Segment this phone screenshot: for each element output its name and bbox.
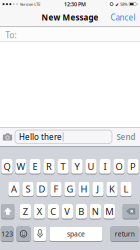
staticText: K bbox=[109, 183, 115, 195]
staticText: G bbox=[66, 183, 73, 195]
staticText: I bbox=[103, 160, 106, 172]
staticText: C bbox=[50, 205, 56, 217]
staticText: P bbox=[130, 160, 136, 172]
button[interactable]: Camera bbox=[0, 128, 15, 146]
staticText: X bbox=[37, 205, 42, 217]
button[interactable]: Numbers bbox=[1, 226, 13, 242]
staticText: N bbox=[92, 205, 99, 217]
button[interactable]: Dictate bbox=[33, 226, 46, 242]
button[interactable]: space bbox=[49, 226, 102, 242]
staticText: W bbox=[16, 160, 25, 172]
staticText: M bbox=[105, 205, 113, 217]
button[interactable]: M bbox=[104, 204, 115, 219]
staticText: Y bbox=[74, 160, 79, 172]
button[interactable]: B bbox=[76, 204, 87, 219]
button[interactable]: Emoji bbox=[16, 226, 30, 242]
staticText: space bbox=[67, 229, 85, 238]
button[interactable]: L bbox=[120, 181, 132, 197]
button[interactable]: D bbox=[36, 181, 48, 197]
button[interactable]: Hello there bbox=[15, 130, 112, 144]
button[interactable]: P bbox=[127, 159, 139, 174]
staticText: Q bbox=[3, 160, 10, 172]
button[interactable]: E bbox=[29, 159, 41, 174]
button[interactable]: Q bbox=[1, 159, 13, 174]
button[interactable]: return bbox=[110, 226, 139, 242]
button[interactable]: V bbox=[62, 204, 73, 219]
staticText: New Message bbox=[41, 12, 98, 23]
staticText: O bbox=[115, 160, 122, 172]
staticText: U bbox=[87, 160, 94, 172]
button[interactable]: U bbox=[85, 159, 97, 174]
staticText: A bbox=[11, 183, 17, 195]
button[interactable]: N bbox=[90, 204, 101, 219]
staticText: E bbox=[32, 160, 37, 172]
staticText: Verizon bbox=[20, 1, 33, 7]
button[interactable]: C bbox=[48, 204, 59, 219]
staticText: To: bbox=[5, 30, 16, 40]
staticText: 123 bbox=[1, 229, 13, 238]
staticText: 12:30 PM bbox=[64, 1, 86, 8]
button[interactable]: K bbox=[106, 181, 118, 197]
staticText: T bbox=[60, 160, 65, 172]
button[interactable]: R bbox=[43, 159, 55, 174]
staticText: return bbox=[115, 229, 135, 238]
button[interactable]: J bbox=[92, 181, 104, 197]
button[interactable]: W bbox=[15, 159, 27, 174]
button[interactable]: Shift bbox=[1, 204, 14, 219]
button[interactable]: Cancel bbox=[110, 12, 140, 23]
staticText: S bbox=[25, 183, 30, 195]
staticText: LTE bbox=[34, 1, 40, 7]
staticText: H bbox=[80, 183, 87, 195]
staticText: Send bbox=[116, 131, 135, 142]
button[interactable]: I bbox=[99, 159, 111, 174]
button[interactable]: Z bbox=[20, 204, 31, 219]
staticText: R bbox=[46, 160, 52, 172]
staticText: V bbox=[64, 205, 70, 217]
button[interactable]: Send bbox=[112, 128, 140, 146]
staticText: B bbox=[78, 205, 84, 217]
button[interactable]: Y bbox=[71, 159, 83, 174]
button[interactable]: O bbox=[113, 159, 125, 174]
button[interactable]: Delete bbox=[123, 204, 139, 219]
button[interactable]: G bbox=[64, 181, 76, 197]
staticText: 58% bbox=[120, 1, 127, 7]
staticText: F bbox=[53, 183, 58, 195]
staticText: Z bbox=[23, 205, 28, 217]
button[interactable]: A bbox=[8, 181, 20, 197]
staticText: Hello there bbox=[19, 131, 62, 142]
staticText: L bbox=[123, 183, 128, 195]
button[interactable]: S bbox=[22, 181, 34, 197]
button[interactable]: F bbox=[50, 181, 62, 197]
staticText: D bbox=[38, 183, 45, 195]
staticText: J bbox=[96, 183, 99, 195]
staticText: Cancel bbox=[110, 12, 135, 23]
button[interactable]: To: bbox=[0, 27, 140, 41]
button[interactable]: T bbox=[57, 159, 69, 174]
button[interactable]: X bbox=[34, 204, 45, 219]
button[interactable]: H bbox=[78, 181, 90, 197]
